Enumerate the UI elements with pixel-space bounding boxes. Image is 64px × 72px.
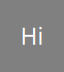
staticText: Hi <box>20 21 43 51</box>
